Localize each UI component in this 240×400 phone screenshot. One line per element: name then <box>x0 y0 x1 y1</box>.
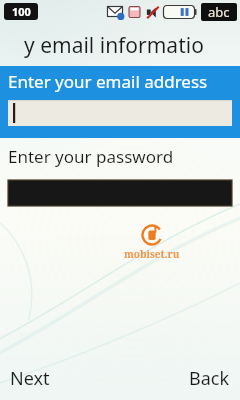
button[interactable]: Back <box>189 366 230 391</box>
other: Silent mode <box>144 5 160 20</box>
staticText: y email informatio <box>24 31 204 60</box>
staticText: 100 <box>12 4 31 19</box>
button[interactable] <box>8 180 232 206</box>
staticText: Back <box>189 366 230 391</box>
staticText: Enter your password <box>8 145 174 168</box>
button[interactable] <box>8 100 232 126</box>
other: Memory card <box>128 5 141 20</box>
staticText: abc <box>208 3 230 21</box>
button[interactable]: Next <box>10 366 50 391</box>
other: Battery <box>163 5 197 19</box>
other: Unread message <box>107 5 125 20</box>
staticText: Next <box>10 366 50 391</box>
staticText: Enter your email address <box>8 70 208 93</box>
staticText: mobiset.ru <box>124 247 180 261</box>
button[interactable]: Enter your email address <box>0 66 240 138</box>
